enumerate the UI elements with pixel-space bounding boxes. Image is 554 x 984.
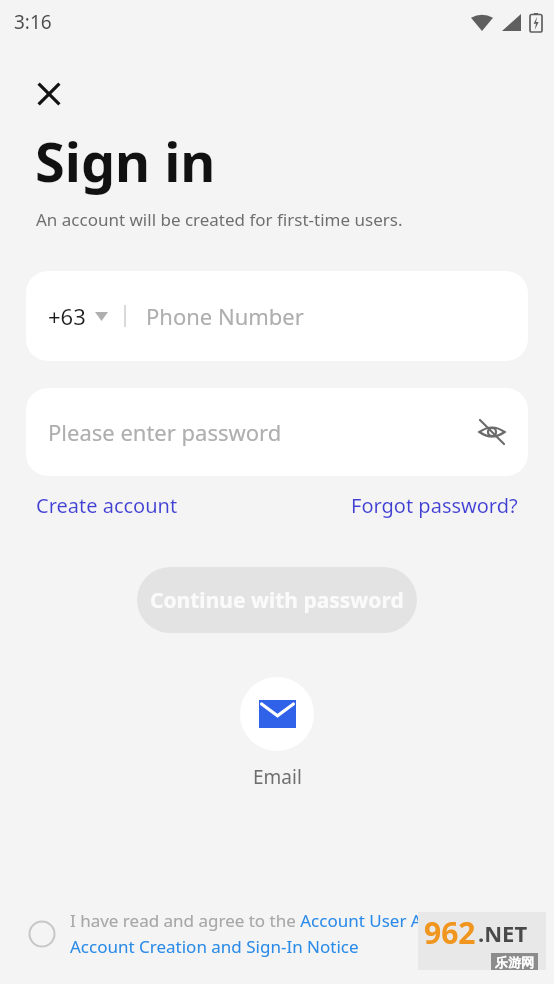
- staticText: An account will be created for first-tim…: [36, 208, 403, 231]
- staticText: Continue with password: [150, 586, 404, 615]
- button[interactable]: Show password: [470, 410, 514, 454]
- button[interactable]: I have read and agree to the Account Use…: [0, 909, 554, 976]
- staticText: Create account: [36, 492, 178, 519]
- button[interactable]: Continue with password: [137, 567, 417, 633]
- staticText: Forgot password?: [351, 492, 518, 519]
- button[interactable]: Email: [236, 673, 318, 794]
- staticText: 3:16: [14, 9, 52, 35]
- staticText: +63: [48, 301, 86, 331]
- staticText: Sign in: [35, 124, 216, 198]
- button[interactable]: Create account: [36, 492, 178, 519]
- staticText: I have read and agree to the Account Use…: [70, 909, 536, 958]
- staticText: .NET: [478, 918, 528, 948]
- button[interactable]: Close: [25, 70, 73, 118]
- button[interactable]: Forgot password?: [351, 492, 518, 519]
- staticText: Email: [253, 764, 302, 790]
- button[interactable]: +63: [26, 271, 528, 361]
- staticText: 962: [424, 912, 476, 953]
- staticText: Please enter password: [48, 417, 282, 447]
- staticText: Phone Number: [146, 301, 304, 331]
- button[interactable]: Please enter password: [26, 388, 528, 476]
- staticText: 乐游网: [495, 954, 534, 969]
